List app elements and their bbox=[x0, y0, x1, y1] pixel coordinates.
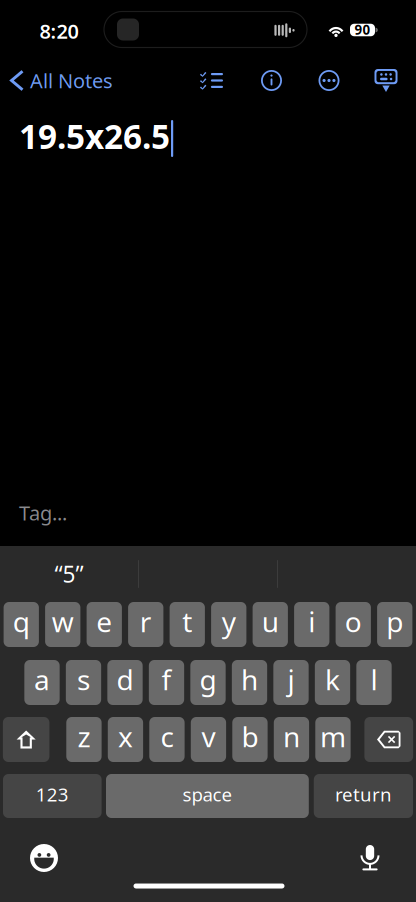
staticText: s bbox=[77, 661, 90, 698]
staticText: z bbox=[77, 718, 90, 755]
staticText: h bbox=[241, 661, 258, 698]
staticText: u bbox=[262, 603, 279, 640]
staticText: m bbox=[320, 718, 346, 755]
button[interactable]: space bbox=[106, 774, 309, 818]
button[interactable]: a bbox=[24, 660, 60, 705]
button[interactable]: q bbox=[4, 602, 39, 647]
staticText: “5” bbox=[54, 559, 83, 589]
staticText: return bbox=[335, 782, 392, 807]
staticText: b bbox=[241, 718, 258, 755]
button[interactable]: m bbox=[315, 717, 351, 762]
button[interactable]: p bbox=[377, 602, 412, 647]
button[interactable]: w bbox=[45, 602, 80, 647]
button[interactable]: Emoji bbox=[22, 836, 66, 880]
staticText: f bbox=[161, 661, 171, 698]
button[interactable]: Delete bbox=[364, 717, 413, 762]
button[interactable]: e bbox=[87, 602, 122, 647]
button[interactable]: n bbox=[274, 717, 309, 762]
button[interactable]: o bbox=[336, 602, 371, 647]
button[interactable]: All Notes bbox=[0, 58, 130, 102]
button[interactable]: j bbox=[273, 660, 309, 705]
staticText: 123 bbox=[36, 782, 69, 807]
staticText: w bbox=[52, 603, 74, 640]
button[interactable]: 123 bbox=[3, 774, 102, 818]
staticText: d bbox=[116, 661, 133, 698]
staticText: c bbox=[160, 718, 173, 755]
button[interactable]: u bbox=[253, 602, 288, 647]
button[interactable]: z bbox=[66, 717, 102, 762]
button[interactable]: c bbox=[149, 717, 185, 762]
button[interactable]: b bbox=[232, 717, 268, 762]
button[interactable]: y bbox=[211, 602, 246, 647]
staticText: j bbox=[287, 661, 294, 698]
button[interactable]: f bbox=[149, 660, 184, 705]
button[interactable]: v bbox=[191, 717, 226, 762]
staticText: 8:20 bbox=[39, 18, 78, 44]
button[interactable]: x bbox=[108, 717, 143, 762]
button[interactable]: i bbox=[294, 602, 329, 647]
staticText: 90 bbox=[354, 21, 370, 38]
button[interactable]: Note Info bbox=[249, 58, 293, 102]
button[interactable]: Dictation bbox=[348, 836, 392, 880]
button[interactable]: Checklist bbox=[190, 58, 234, 102]
staticText: Tag... bbox=[19, 499, 67, 526]
button[interactable]: l bbox=[356, 660, 392, 705]
staticText: e bbox=[96, 603, 112, 640]
button[interactable]: d bbox=[107, 660, 143, 705]
button[interactable]: s bbox=[66, 660, 101, 705]
staticText: y bbox=[222, 603, 236, 640]
button[interactable]: h bbox=[232, 660, 267, 705]
staticText: v bbox=[201, 718, 215, 755]
staticText: space bbox=[182, 782, 232, 807]
staticText: i bbox=[308, 603, 315, 640]
staticText: All Notes bbox=[30, 67, 113, 94]
staticText: n bbox=[283, 718, 300, 755]
staticText: t bbox=[182, 603, 192, 640]
button[interactable]: r bbox=[128, 602, 163, 647]
button[interactable]: g bbox=[190, 660, 226, 705]
staticText: k bbox=[325, 661, 340, 698]
button[interactable]: Shift bbox=[3, 717, 49, 762]
staticText: g bbox=[199, 661, 216, 698]
staticText: p bbox=[386, 603, 403, 640]
button[interactable]: Hide Keyboard bbox=[364, 58, 408, 102]
button[interactable]: More bbox=[307, 58, 351, 102]
staticText: l bbox=[370, 661, 377, 698]
staticText: r bbox=[140, 603, 152, 640]
staticText: a bbox=[34, 661, 50, 698]
staticText: 19.5x26.5 bbox=[19, 114, 170, 158]
button[interactable]: t bbox=[170, 602, 205, 647]
staticText: o bbox=[345, 603, 362, 640]
button[interactable]: k bbox=[315, 660, 350, 705]
staticText: x bbox=[118, 718, 133, 755]
button[interactable]: return bbox=[314, 774, 413, 818]
staticText: q bbox=[13, 603, 30, 640]
